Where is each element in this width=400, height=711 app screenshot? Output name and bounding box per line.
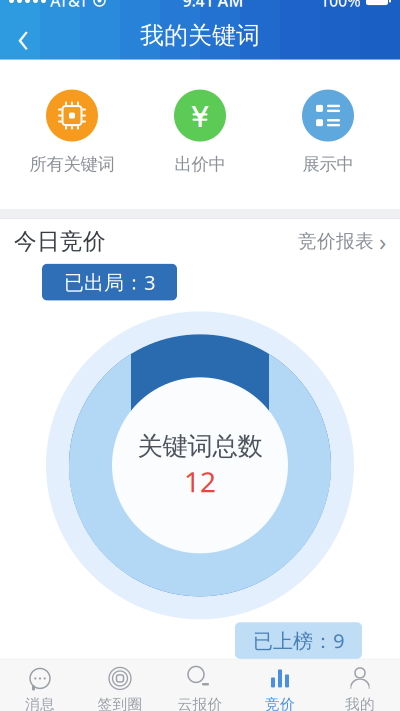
button[interactable]: 竞价	[240, 659, 320, 711]
button[interactable]: 云报价	[160, 659, 240, 711]
button[interactable]: Back	[0, 11, 46, 59]
staticText: 出价中	[174, 153, 225, 175]
button[interactable]: 已上榜：9	[235, 622, 362, 659]
staticText: 已出局：3	[64, 269, 155, 295]
button[interactable]: Y	[136, 89, 264, 175]
staticText: 今日竞价	[14, 227, 106, 255]
staticText: 竞价	[265, 695, 295, 711]
button[interactable]: 签到圈	[80, 659, 160, 711]
staticText: 展示中	[302, 153, 353, 175]
staticText: AT&T	[50, 0, 88, 11]
button[interactable]: 今日竞价	[0, 219, 400, 264]
button[interactable]: 消息	[0, 659, 80, 711]
staticText: 关键词总数	[137, 431, 262, 462]
staticText: 签到圈	[97, 695, 142, 711]
staticText: 9:41 AM	[182, 0, 243, 11]
staticText: 竞价报表	[298, 230, 374, 253]
staticText: 我的	[345, 695, 375, 711]
staticText: 100%	[320, 0, 361, 11]
staticText: ›	[379, 225, 386, 257]
staticText: 云报价	[177, 695, 222, 711]
staticText: 我的关键词	[140, 21, 260, 50]
staticText: 12	[184, 463, 216, 500]
button[interactable]: 展示中	[264, 89, 392, 175]
button[interactable]: 已出局：3	[42, 264, 177, 300]
staticText: ‹	[17, 5, 29, 66]
button[interactable]: 我的	[320, 659, 400, 711]
staticText: 消息	[25, 695, 55, 711]
staticText: 所有关键词	[29, 153, 114, 175]
staticText: Y	[191, 96, 208, 135]
button[interactable]: 所有关键词	[8, 89, 136, 175]
staticText: 已上榜：9	[253, 627, 344, 654]
